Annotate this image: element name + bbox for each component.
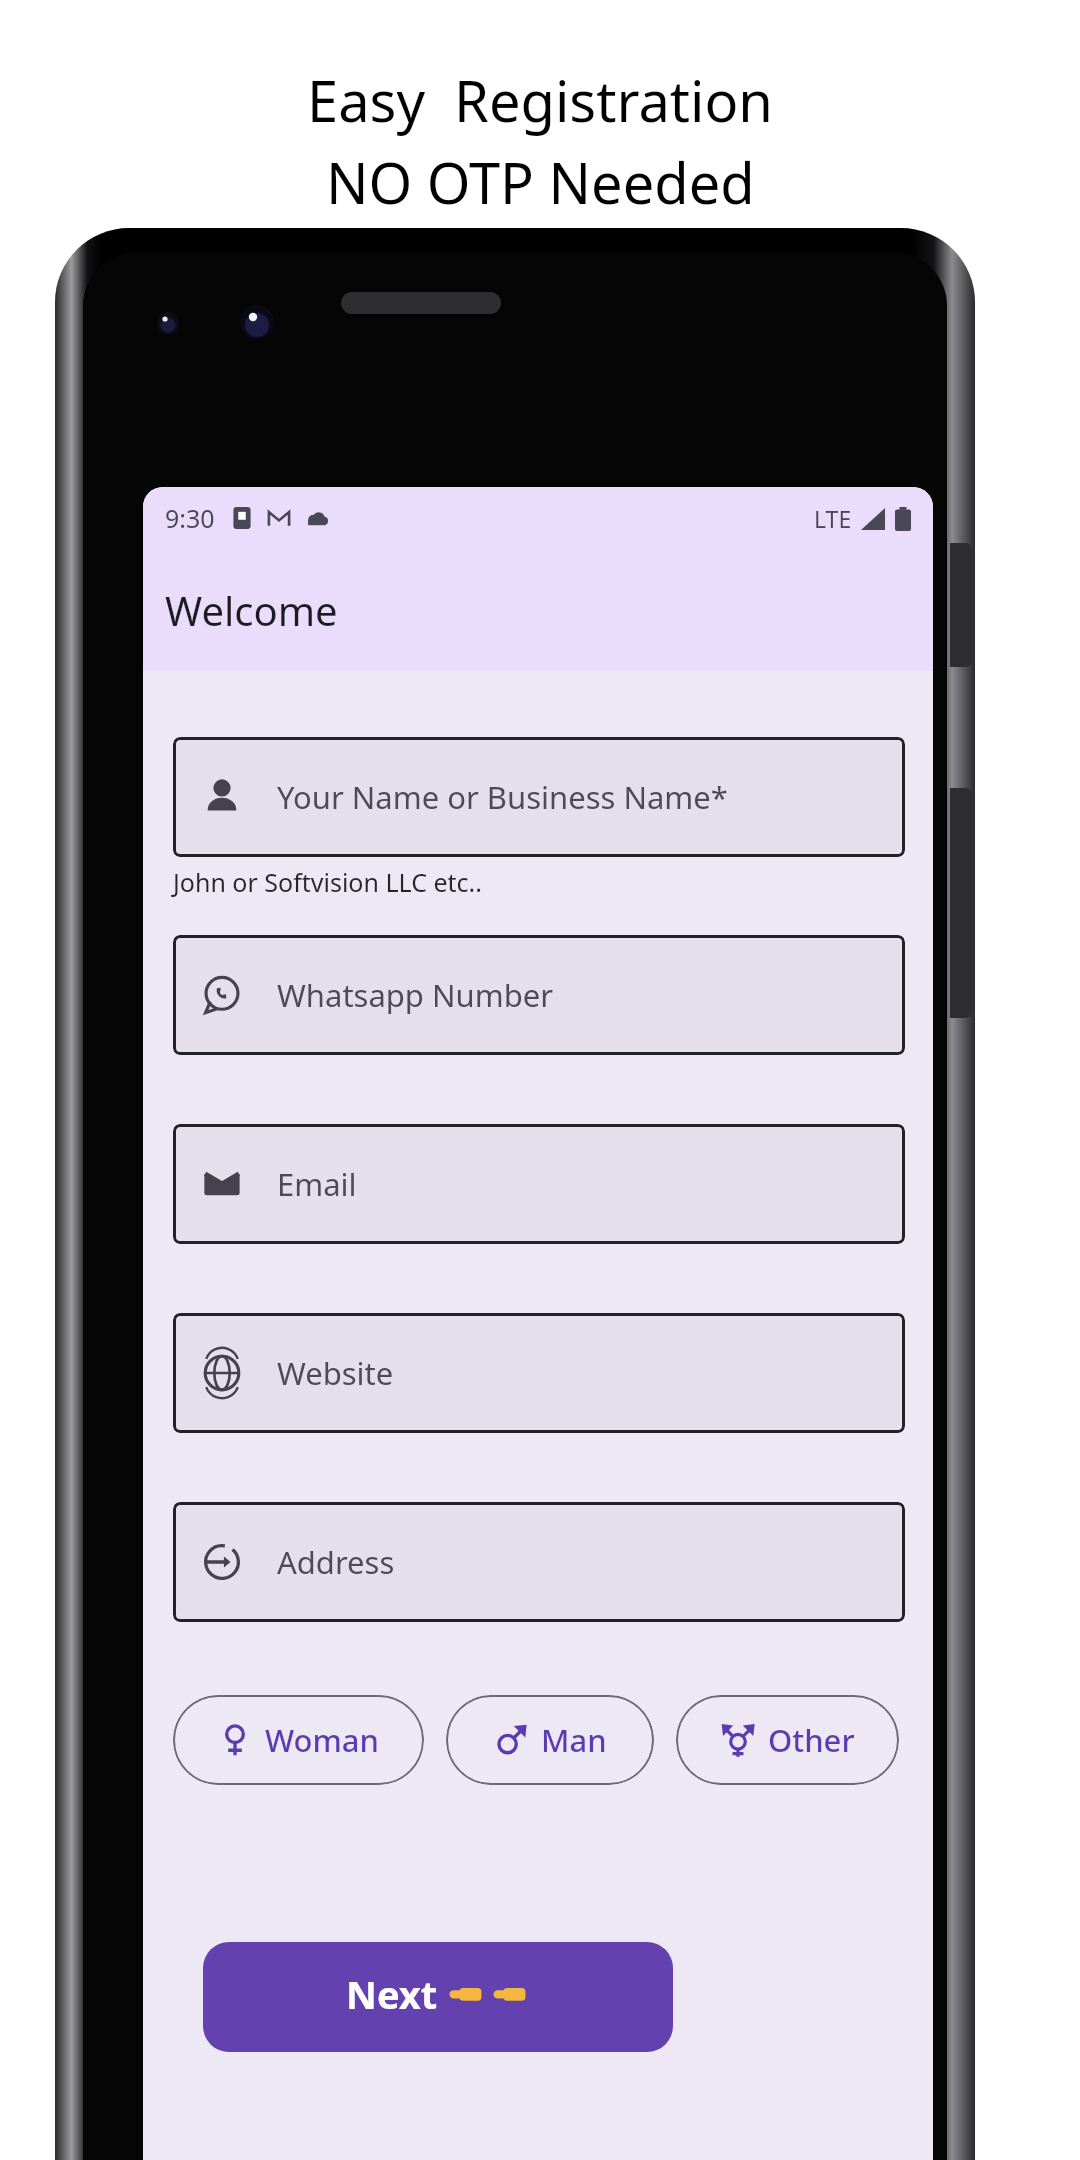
staticText: John or Softvision LLC etc.. <box>173 865 482 899</box>
button[interactable]: Welcome <box>143 549 933 671</box>
staticText: Easy Registration <box>307 62 773 138</box>
staticText: Whatsapp Number <box>277 974 554 1016</box>
button[interactable]: Man <box>446 1695 654 1785</box>
staticText: LTE <box>814 503 852 534</box>
button[interactable]: Next <box>203 1942 673 2052</box>
button[interactable]: Website <box>173 1313 905 1433</box>
staticText: Next <box>346 1968 448 2020</box>
staticText: Website <box>277 1352 394 1394</box>
staticText: Address <box>277 1541 395 1583</box>
staticText: Your Name or Business Name* <box>277 776 728 818</box>
button[interactable]: Woman <box>173 1695 424 1785</box>
staticText: 9:30 <box>165 501 215 535</box>
staticText: Woman <box>265 1719 380 1761</box>
button[interactable]: Email <box>173 1124 905 1244</box>
button[interactable]: Other <box>676 1695 899 1785</box>
staticText: Other <box>768 1719 855 1761</box>
button[interactable]: Your Name or Business Name* <box>173 737 905 857</box>
button[interactable]: Whatsapp Number <box>173 935 905 1055</box>
staticText: Man <box>541 1719 607 1761</box>
staticText: Welcome <box>165 583 338 637</box>
staticText: NO OTP Needed <box>326 144 755 220</box>
staticText: Email <box>277 1163 357 1205</box>
button[interactable]: Address <box>173 1502 905 1622</box>
